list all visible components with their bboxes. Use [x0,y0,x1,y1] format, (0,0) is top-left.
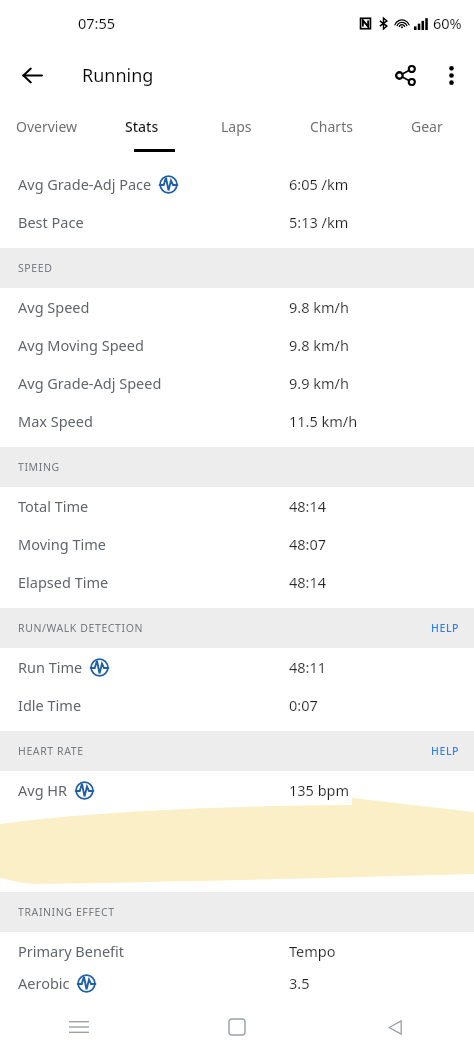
staticText: 6:05 /km [289,174,349,194]
staticText: 9.8 km/h [289,297,349,317]
button[interactable]: HELP [417,621,474,635]
staticText: 07:55 [78,13,116,33]
staticText: 48:14 [289,572,327,592]
button[interactable]: More options [428,52,474,98]
staticText: Avg Speed [18,297,90,317]
button[interactable]: Avg HR [0,771,474,809]
button[interactable]: Overview [0,104,94,149]
staticText: 11.5 km/h [289,411,358,431]
staticText: 5:13 /km [289,212,349,232]
staticText: 135 bpm [289,780,350,800]
button[interactable]: Recent apps [0,996,158,1058]
button[interactable]: Max Speed [0,402,474,440]
button[interactable]: Home [158,996,316,1058]
button[interactable]: Laps [189,104,284,149]
staticText: 0:07 [289,695,318,715]
staticText: Max Heart Rate [18,818,124,838]
staticText: TIMING [18,460,60,474]
staticText: 3.5 [289,973,310,993]
button[interactable]: Elapsed Time [0,563,474,601]
staticText: HELP [431,621,460,635]
staticText: RUN/WALK DETECTION [18,621,144,635]
staticText: 48:14 [289,496,327,516]
staticText: Moving Time [18,534,106,554]
staticText: Aerobic [18,973,70,993]
button[interactable]: Moving Time [0,525,474,563]
staticText: Laps [221,117,252,136]
button[interactable]: Stats [94,104,189,149]
staticText: Elapsed Time [18,572,109,592]
staticText: Stats [125,117,159,136]
staticText: Primary Benefit [18,941,125,961]
staticText: Avg Grade-Adj Pace [18,174,152,194]
button[interactable]: Charts [284,104,379,149]
staticText: SPEED [18,261,53,275]
staticText: Max Speed [18,411,93,431]
staticText: Charts [310,117,353,136]
button[interactable]: Avg Grade-Adj Speed [0,364,474,402]
staticText: HEART RATE [18,744,84,758]
staticText: 48:11 [289,657,327,677]
staticText: 48:07 [289,534,327,554]
staticText: Idle Time [18,695,82,715]
staticText: 60% [433,13,462,33]
button[interactable]: Back [316,996,474,1058]
button[interactable]: Share [382,52,428,98]
button[interactable]: Recovery Heart Rate [0,847,474,885]
staticText: Avg HR [18,780,68,800]
button[interactable]: Aerobic [0,970,474,996]
button[interactable]: Gear [379,104,474,149]
staticText: 9.8 km/h [289,335,349,355]
button[interactable]: HELP [417,744,474,758]
staticText: Run Time [18,657,83,677]
button[interactable]: Max Heart Rate [0,809,474,847]
staticText: Tempo [289,941,336,961]
button[interactable]: Avg Grade-Adj Pace [0,165,474,203]
staticText: Avg Grade-Adj Speed [18,373,162,393]
button[interactable]: Avg Speed [0,288,474,326]
staticText: HELP [431,744,460,758]
button[interactable]: Primary Benefit [0,932,474,970]
button[interactable]: Back [10,53,54,97]
staticText: 9.9 km/h [289,373,349,393]
staticText: Overview [16,117,78,136]
staticText: Avg Moving Speed [18,335,144,355]
button[interactable]: Idle Time [0,686,474,724]
button[interactable]: Total Time [0,487,474,525]
button[interactable]: Run Time [0,648,474,686]
staticText: Gear [411,117,443,136]
button[interactable]: Best Pace [0,203,474,241]
staticText: Best Pace [18,212,84,232]
staticText: TRAINING EFFECT [18,905,115,919]
staticText: Running [82,63,154,88]
button[interactable]: Avg Moving Speed [0,326,474,364]
staticText: Total Time [18,496,89,516]
